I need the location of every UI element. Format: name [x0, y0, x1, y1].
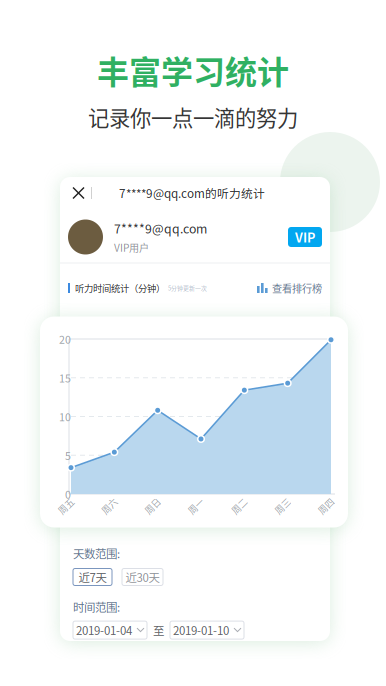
staticText: 5分钟更新一次: [168, 284, 207, 292]
staticText: 听力时间统计（分钟）: [75, 281, 165, 295]
staticText: 周日: [144, 500, 162, 512]
staticText: 周三: [274, 500, 292, 512]
button[interactable]: 查看排行榜: [257, 281, 322, 295]
button[interactable]: 2019-01-04: [73, 621, 147, 639]
button[interactable]: Close: [66, 180, 91, 205]
staticText: 近7天: [78, 569, 106, 585]
staticText: 7****9@qq.com的听力统计: [119, 184, 265, 201]
staticText: 周四: [317, 500, 335, 512]
staticText: 2019-01-04: [76, 622, 132, 638]
staticText: 10: [59, 409, 71, 424]
staticText: VIP用户: [114, 240, 149, 255]
staticText: 天数范围:: [73, 545, 120, 561]
button[interactable]: 近7天: [73, 568, 112, 585]
staticText: 记录你一点一滴的努力: [88, 102, 298, 132]
button[interactable]: 近30天: [122, 568, 163, 585]
staticText: 近30天: [125, 569, 159, 585]
staticText: 7****9@qq.com: [114, 219, 207, 237]
staticText: 0: [65, 486, 71, 502]
staticText: 丰富学习统计: [97, 47, 289, 93]
staticText: 周二: [230, 500, 248, 512]
staticText: 15: [59, 370, 71, 385]
staticText: VIP: [295, 228, 315, 246]
staticText: 时间范围:: [73, 598, 120, 615]
staticText: 2019-01-10: [173, 622, 229, 638]
staticText: 5: [65, 447, 71, 463]
staticText: 周一: [187, 500, 205, 512]
button[interactable]: VIP: [288, 227, 322, 247]
staticText: 周六: [100, 500, 118, 512]
staticText: 至: [153, 622, 164, 638]
staticText: 查看排行榜: [272, 281, 322, 295]
staticText: 20: [59, 331, 71, 347]
staticText: 周五: [57, 500, 75, 512]
button[interactable]: 2019-01-10: [170, 621, 244, 639]
